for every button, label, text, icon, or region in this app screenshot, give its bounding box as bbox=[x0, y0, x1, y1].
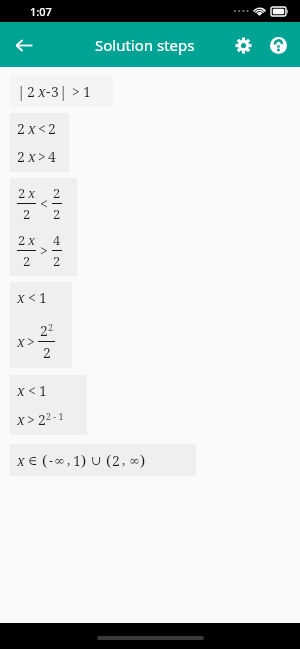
staticText: , bbox=[122, 451, 126, 469]
staticText: 2 bbox=[48, 119, 56, 138]
staticText: x bbox=[28, 184, 36, 202]
staticText: 2 bbox=[17, 147, 25, 166]
staticText: 2 bbox=[40, 321, 48, 340]
staticText: ∞ bbox=[129, 453, 140, 468]
staticText: < bbox=[28, 288, 36, 307]
staticText: x bbox=[17, 410, 25, 429]
staticText: x bbox=[17, 451, 25, 470]
staticText: > bbox=[40, 241, 48, 260]
button[interactable]: Back bbox=[6, 27, 42, 63]
staticText: ) bbox=[140, 450, 146, 470]
staticText: 2 bbox=[112, 451, 120, 470]
staticText: - bbox=[49, 451, 54, 469]
staticText: , bbox=[67, 451, 71, 469]
staticText: > bbox=[72, 82, 80, 101]
staticText: x bbox=[38, 82, 46, 101]
staticText: > bbox=[38, 147, 46, 166]
staticText: 2 bbox=[38, 410, 46, 429]
staticText: > bbox=[27, 332, 35, 351]
button[interactable]: x bbox=[10, 282, 72, 368]
staticText: ∞ bbox=[54, 453, 65, 468]
staticText: x bbox=[17, 332, 25, 351]
button[interactable]: | bbox=[10, 75, 113, 107]
staticText: 1 bbox=[83, 82, 91, 101]
staticText: 4 bbox=[53, 231, 61, 249]
button[interactable]: Help bbox=[262, 29, 294, 61]
staticText: | bbox=[59, 81, 68, 101]
staticText: x bbox=[17, 381, 25, 400]
staticText: < bbox=[38, 119, 46, 138]
staticText: 2 bbox=[27, 82, 35, 101]
staticText: ( bbox=[106, 450, 112, 470]
staticText: x bbox=[28, 231, 36, 249]
button[interactable]: Settings bbox=[227, 29, 259, 61]
staticText: 2 bbox=[23, 252, 31, 270]
staticText: 4 bbox=[48, 147, 56, 166]
staticText: 2 bbox=[53, 205, 61, 223]
staticText: < bbox=[40, 194, 48, 213]
staticText: ∪ bbox=[91, 453, 102, 468]
staticText: < bbox=[28, 381, 36, 400]
button[interactable]: x bbox=[10, 375, 87, 435]
staticText: 2 bbox=[17, 119, 25, 138]
staticText: x bbox=[28, 119, 36, 138]
staticText: 2 bbox=[23, 205, 31, 223]
staticText: 2 bbox=[18, 184, 26, 202]
staticText: 2 - 1 bbox=[46, 410, 64, 422]
staticText: | bbox=[17, 81, 26, 101]
staticText: 2 bbox=[43, 343, 51, 362]
staticText: 2 bbox=[18, 231, 26, 249]
button[interactable]: 2 bbox=[10, 178, 77, 276]
staticText: > bbox=[27, 410, 35, 429]
staticText: x bbox=[28, 147, 36, 166]
button[interactable]: x bbox=[10, 444, 196, 476]
staticText: 1:07 bbox=[30, 4, 52, 19]
staticText: 3 bbox=[51, 82, 59, 101]
staticText: x bbox=[17, 288, 25, 307]
staticText: 2 bbox=[53, 184, 61, 202]
staticText: 1 bbox=[73, 451, 81, 470]
staticText: ∈ bbox=[28, 453, 38, 468]
staticText: 1 bbox=[39, 381, 47, 400]
staticText: - bbox=[46, 82, 51, 101]
staticText: Solution steps bbox=[95, 35, 195, 55]
staticText: ) bbox=[81, 450, 87, 470]
staticText: 2 bbox=[53, 252, 61, 270]
staticText: ( bbox=[42, 450, 48, 470]
staticText: 1 bbox=[39, 288, 47, 307]
staticText: 2 bbox=[48, 321, 54, 333]
button[interactable]: 2 bbox=[10, 113, 69, 172]
